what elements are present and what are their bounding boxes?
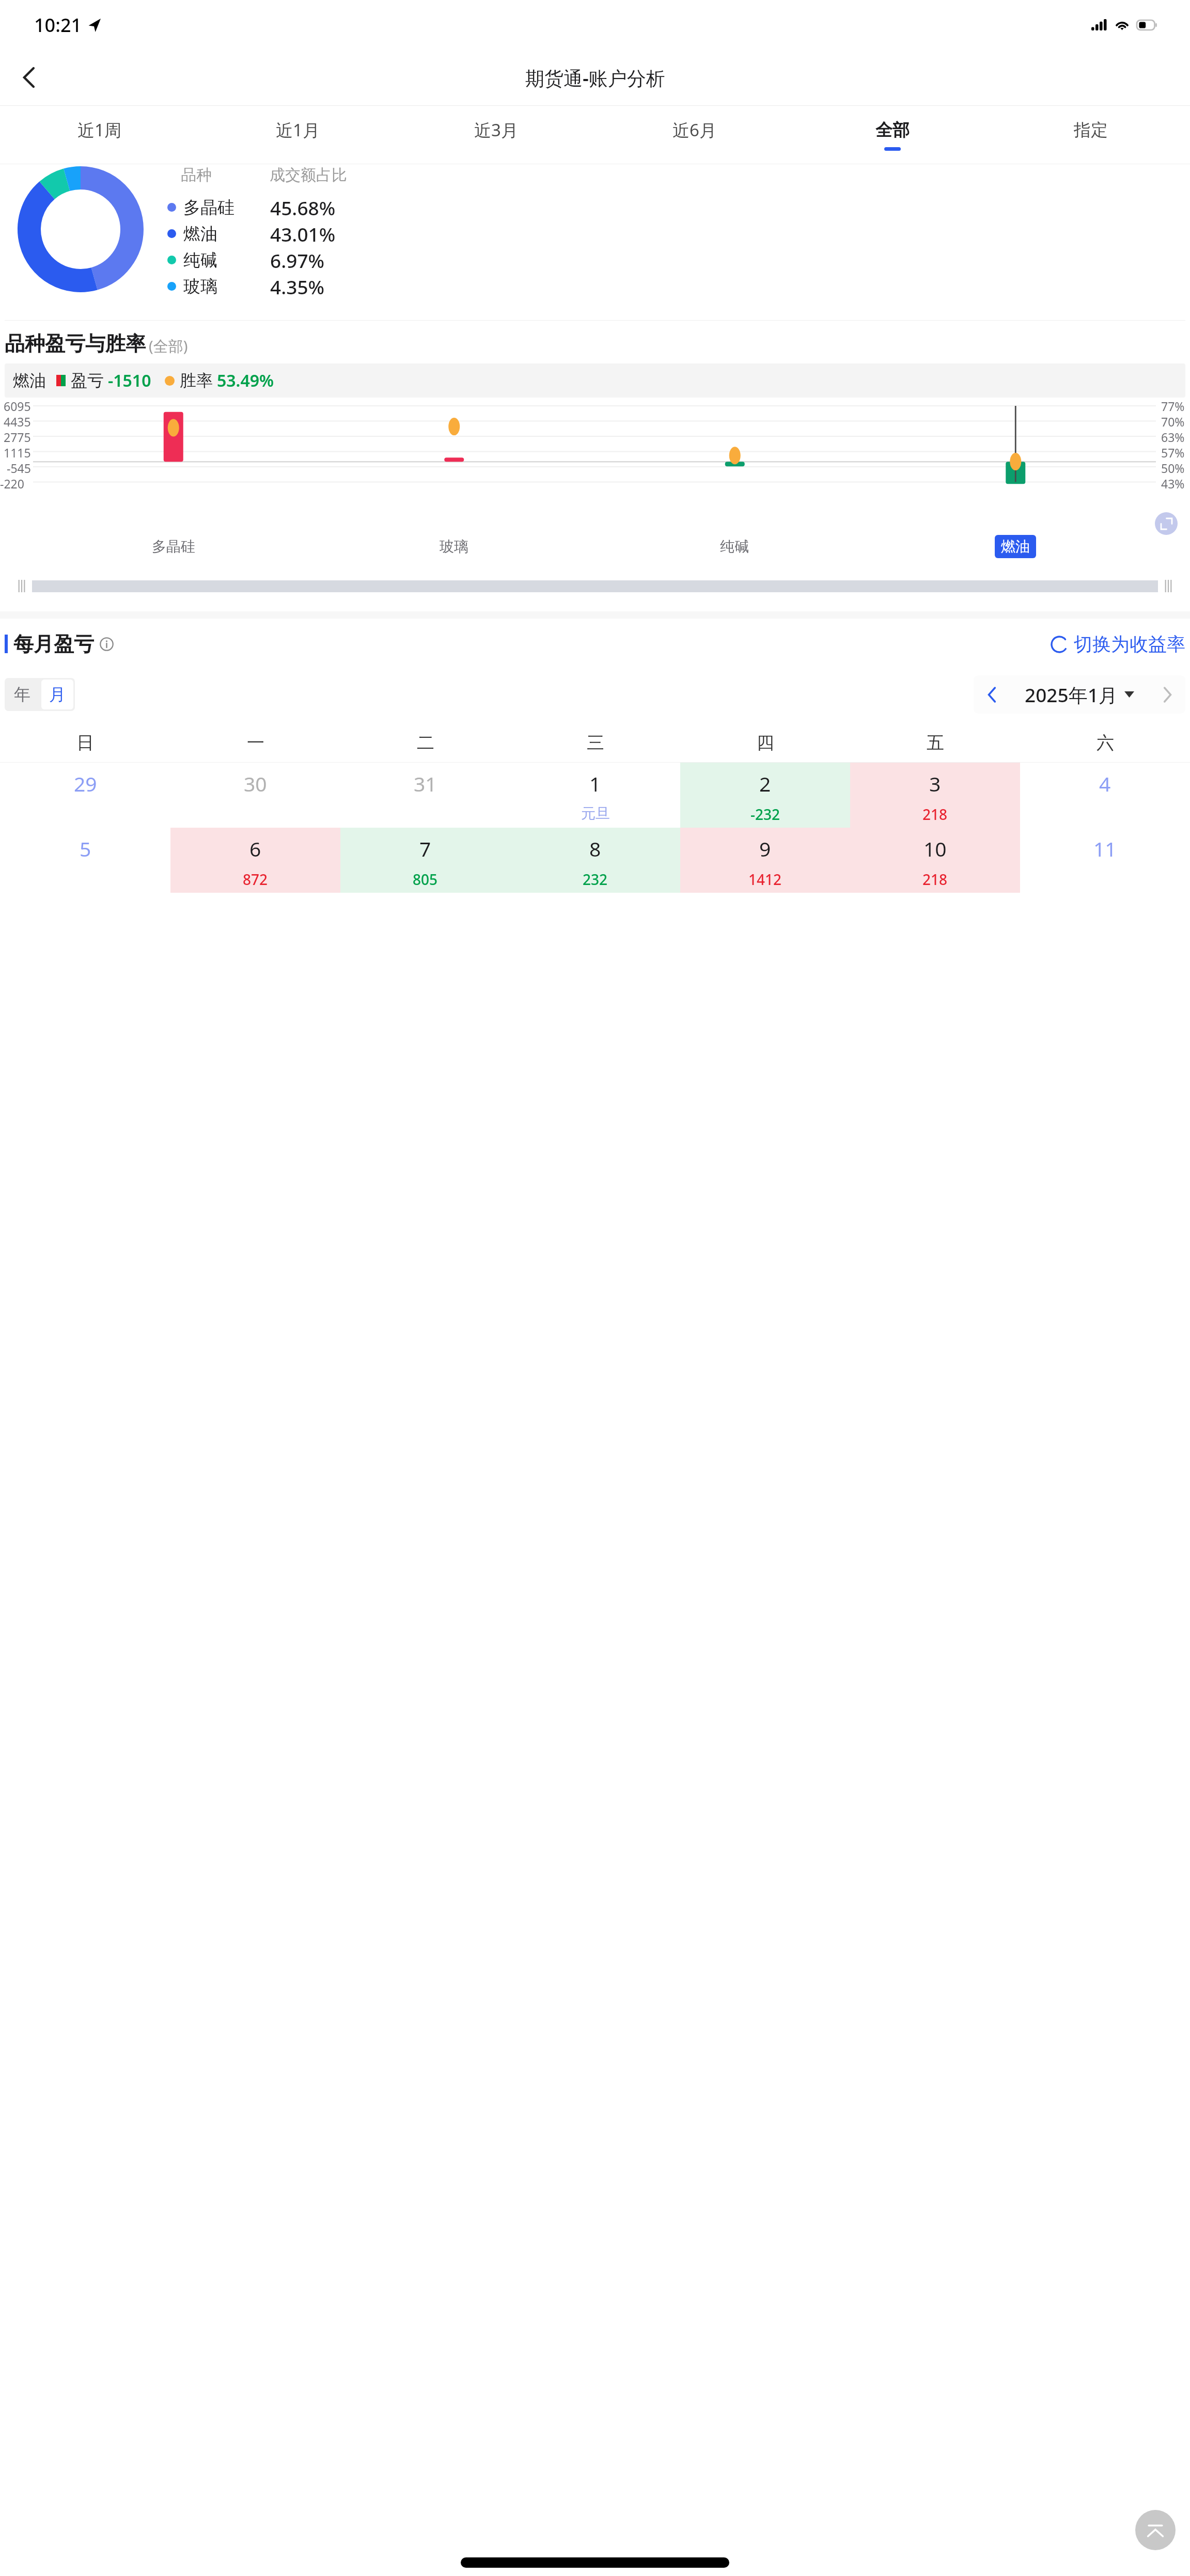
button[interactable]: 近3月 [397, 106, 595, 164]
staticText: 多晶硅 [183, 197, 270, 218]
button[interactable]: 4 [1020, 763, 1190, 828]
staticText: 品种 [181, 165, 270, 185]
button[interactable]: 玻璃 [161, 273, 1190, 299]
staticText: 近6月 [672, 118, 716, 141]
staticText: 1412 [748, 870, 782, 889]
staticText: 五 [927, 732, 944, 754]
button[interactable]: 纯碱 [717, 534, 752, 559]
staticText: -2205 [0, 476, 31, 491]
button[interactable]: Next month [1148, 675, 1185, 714]
staticText: 燃油 [183, 223, 270, 245]
button[interactable]: 多晶硅 [149, 534, 198, 559]
button[interactable]: 燃油 [161, 220, 1190, 247]
button[interactable]: 1 [510, 763, 680, 828]
staticText: 1 [589, 770, 601, 797]
button[interactable]: 7 [340, 828, 510, 893]
staticText: 31 [414, 770, 437, 797]
staticText: 纯碱 [720, 538, 749, 556]
staticText: 品种盈亏与胜率 [5, 331, 146, 356]
button[interactable]: 9 [680, 828, 850, 893]
button[interactable]: 30 [170, 763, 340, 828]
staticText: 6095 [4, 398, 31, 414]
staticText: 805 [413, 870, 438, 889]
staticText: 53.49% [217, 369, 274, 392]
staticText: 4435 [4, 414, 31, 429]
staticText: 63% [1161, 429, 1185, 445]
staticText: 近1月 [276, 118, 320, 141]
staticText: 燃油 [1001, 538, 1030, 556]
staticText: 70% [1161, 414, 1185, 429]
staticText: 期货通-账户分析 [525, 65, 665, 91]
button[interactable]: Info [99, 636, 114, 652]
button[interactable]: 玻璃 [436, 534, 472, 559]
button[interactable]: 燃油 [5, 364, 1185, 398]
staticText: 50% [1161, 460, 1185, 476]
staticText: 232 [583, 870, 608, 889]
staticText: 57% [1161, 445, 1185, 460]
staticText: 29 [74, 770, 97, 797]
button[interactable]: 6 [170, 828, 340, 893]
staticText: 切换为收益率 [1074, 633, 1185, 656]
button[interactable]: Previous month [974, 675, 1011, 714]
staticText: 872 [243, 870, 268, 889]
button[interactable]: Range handle [1158, 570, 1179, 602]
button[interactable]: 切换为收益率 [1050, 633, 1185, 656]
staticText: 1115 [4, 445, 31, 460]
staticText: 年 [14, 684, 30, 705]
staticText: 45.68% [270, 195, 336, 220]
staticText: 7 [419, 835, 431, 862]
staticText: 6.97% [270, 247, 325, 273]
staticText: 77% [1161, 398, 1185, 414]
staticText: 胜率 [180, 370, 213, 391]
button[interactable]: 31 [340, 763, 510, 828]
button[interactable]: 全部 [793, 106, 992, 164]
staticText: -232 [750, 804, 780, 824]
staticText: 218 [922, 870, 948, 889]
staticText: 每月盈亏 [13, 631, 94, 657]
button[interactable]: 近1月 [198, 106, 397, 164]
staticText: 10:21 [34, 12, 82, 38]
button[interactable]: 3 [850, 763, 1020, 828]
staticText: 5 [80, 835, 91, 862]
button[interactable]: 多晶硅 [161, 194, 1190, 220]
button[interactable]: 近6月 [595, 106, 793, 164]
button[interactable]: Scroll to top [1135, 2510, 1176, 2550]
staticText: 30 [244, 770, 267, 797]
button[interactable]: 月 [41, 679, 73, 709]
staticText: 近3月 [474, 118, 518, 141]
button[interactable]: 近1周 [0, 106, 198, 164]
button[interactable]: Back [11, 59, 48, 96]
button[interactable]: 29 [0, 763, 170, 828]
button[interactable]: 纯碱 [161, 247, 1190, 273]
staticText: 近1周 [77, 118, 121, 141]
button[interactable]: Expand chart [1155, 512, 1178, 535]
staticText: 月 [49, 684, 66, 705]
button[interactable]: 11 [1020, 828, 1190, 893]
staticText: 玻璃 [183, 276, 270, 297]
staticText: 6 [249, 835, 261, 862]
button[interactable]: 指定 [992, 106, 1190, 164]
staticText: 二 [417, 732, 434, 754]
staticText: -1510 [108, 369, 151, 392]
staticText: 2775 [4, 429, 31, 445]
staticText: 一 [247, 732, 264, 754]
staticText: 全部 [875, 119, 910, 141]
staticText: 多晶硅 [152, 538, 195, 556]
staticText: 218 [922, 804, 948, 824]
staticText: 4 [1099, 770, 1111, 797]
staticText: 4.35% [270, 274, 325, 299]
staticText: 3 [929, 770, 941, 797]
staticText: 指定 [1074, 119, 1108, 141]
staticText: 日 [76, 732, 94, 754]
button[interactable]: 燃油 [995, 535, 1036, 558]
staticText: 8 [589, 835, 601, 862]
button[interactable]: 5 [0, 828, 170, 893]
button[interactable]: 年 [5, 678, 40, 711]
button[interactable]: 10 [850, 828, 1020, 893]
button[interactable]: Range handle [11, 570, 32, 602]
staticText: 燃油 [13, 370, 46, 391]
button[interactable]: 8 [510, 828, 680, 893]
button[interactable]: 2 [680, 763, 850, 828]
button[interactable]: 2025年1月 [1011, 675, 1148, 714]
staticText: 43.01% [270, 221, 336, 247]
